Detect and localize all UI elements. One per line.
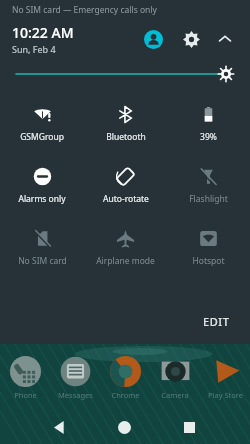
staticText: Phone xyxy=(14,390,37,400)
button[interactable]: Camera xyxy=(150,355,200,400)
staticText: No SIM card xyxy=(18,255,67,267)
staticText: Flashlight xyxy=(189,193,228,205)
button[interactable]: Hotspot xyxy=(167,227,250,269)
staticText: Messages xyxy=(58,390,93,400)
staticText: Play Store xyxy=(208,390,243,400)
button[interactable]: No SIM card xyxy=(0,227,84,269)
staticText: 10:22 AM xyxy=(12,23,74,42)
staticText: Sun, Feb 4 xyxy=(12,43,56,55)
staticText: 39% xyxy=(200,131,217,143)
button[interactable]: 39% xyxy=(167,103,250,145)
staticText: Airplane mode xyxy=(96,255,155,267)
button[interactable]: User xyxy=(138,24,168,54)
staticText: Chrome xyxy=(111,390,140,400)
button[interactable]: Brightness xyxy=(0,63,250,85)
button[interactable]: Flashlight xyxy=(167,165,250,207)
staticText: Hotspot xyxy=(192,255,225,267)
staticText: No SIM card — Emergency calls only xyxy=(12,4,157,16)
button[interactable]: Alarms only xyxy=(0,165,84,207)
button[interactable]: EDIT xyxy=(197,311,236,332)
button[interactable]: Messages xyxy=(50,355,100,400)
button[interactable]: Recents xyxy=(174,412,204,442)
button[interactable]: Bluetooth xyxy=(84,103,167,145)
button[interactable]: Play Store xyxy=(200,355,250,400)
staticText: Bluetooth xyxy=(106,131,146,143)
staticText: Auto-rotate xyxy=(103,193,149,205)
button[interactable]: Chrome xyxy=(100,355,150,400)
button[interactable]: GSMGroup xyxy=(0,103,84,145)
staticText: GSMGroup xyxy=(20,131,64,143)
staticText: Camera xyxy=(161,390,189,400)
button[interactable]: Settings xyxy=(176,24,206,54)
button[interactable]: Collapse xyxy=(210,24,240,54)
button[interactable]: Airplane mode xyxy=(84,227,167,269)
staticText: Alarms only xyxy=(18,193,66,205)
button[interactable]: Auto-rotate xyxy=(84,165,167,207)
button[interactable]: Home xyxy=(109,412,139,442)
button[interactable]: Phone xyxy=(0,355,50,400)
button[interactable]: Back xyxy=(44,412,74,442)
staticText: EDIT xyxy=(203,314,230,329)
